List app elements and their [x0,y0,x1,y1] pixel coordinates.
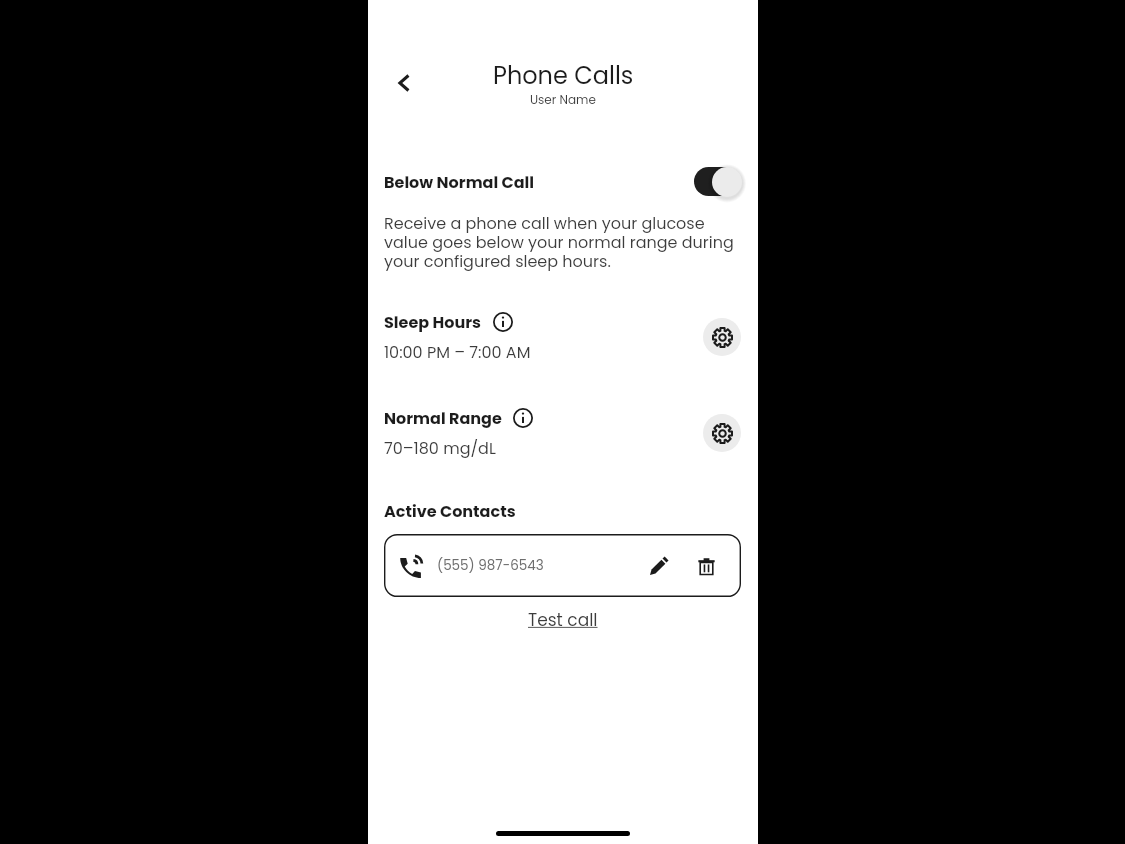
button[interactable]: Below Normal Call toggle [694,167,742,197]
button[interactable]: Delete contact [687,547,725,585]
staticText: Normal Range [384,407,502,429]
staticText: Active Contacts [384,500,516,522]
staticText: Receive a phone call when your glucose v… [384,212,742,273]
button[interactable]: (555) 987-6543 [384,534,741,597]
button[interactable]: Normal range information [502,397,544,439]
staticText: Below Normal Call [384,171,535,193]
staticText: Test call [528,608,598,632]
staticText: Sleep Hours [384,311,481,333]
button[interactable]: Sleep hours information [482,301,524,343]
button[interactable]: Test call [528,608,598,632]
staticText: 10:00 PM – 7:00 AM [384,341,531,363]
staticText: User Name [530,91,596,108]
button[interactable]: Back [382,62,424,104]
button[interactable]: Configure sleep hours [703,318,741,356]
staticText: Phone Calls [493,59,634,93]
staticText: (555) 987-6543 [437,556,544,575]
staticText: 70–180 mg/dL [384,437,496,459]
button[interactable]: Configure normal range [703,414,741,452]
button[interactable]: Edit contact [640,547,678,585]
